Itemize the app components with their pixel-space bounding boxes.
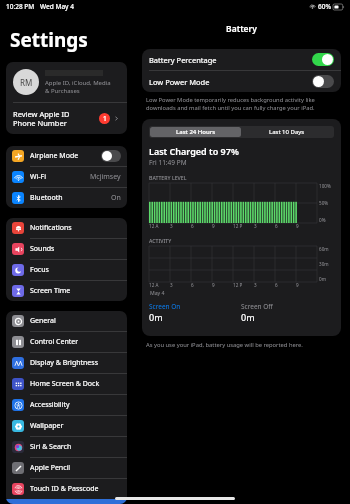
button[interactable]: Airplane Mode [6, 146, 127, 166]
staticText: 60% [318, 2, 331, 11]
button[interactable] [312, 75, 334, 88]
staticText: Home Screen & Dock [30, 379, 100, 389]
staticText: Touch ID & Passcode [30, 484, 99, 494]
staticText: 12 A [149, 223, 159, 229]
button[interactable]: Last 10 Days [241, 127, 333, 137]
staticText: 6 [275, 282, 278, 288]
button[interactable]: Focus [6, 260, 127, 280]
staticText: 12 A [149, 282, 159, 288]
button[interactable]: Screen Time [6, 281, 127, 301]
button[interactable]: Sounds [6, 239, 127, 259]
button[interactable]: Display & Brightness [6, 353, 127, 373]
staticText: 0% [319, 217, 326, 223]
button[interactable]: RM [6, 62, 127, 102]
staticText: Low Power Mode temporarily reduces backg… [146, 96, 315, 111]
button[interactable]: Low Power Mode [142, 71, 341, 92]
button[interactable]: General [6, 311, 127, 331]
staticText: 6 [191, 223, 194, 229]
staticText: Wi-Fi [30, 172, 47, 182]
button[interactable]: Touch ID & Passcode [6, 479, 127, 499]
staticText: 50% [319, 200, 329, 206]
button[interactable] [101, 150, 121, 162]
staticText: On [111, 193, 121, 203]
staticText: Battery [142, 23, 341, 35]
staticText: RM [20, 77, 33, 88]
staticText: 9 [212, 282, 215, 288]
button[interactable]: Battery [6, 499, 127, 504]
staticText: Low Power Mode [149, 77, 210, 87]
button[interactable]: Control Center [6, 332, 127, 352]
staticText: Screen On [149, 302, 181, 311]
staticText: Siri & Search [30, 442, 72, 452]
staticText: 0m [319, 276, 326, 282]
staticText: Last 10 Days [269, 128, 305, 136]
staticText: Last 24 Hours [176, 128, 216, 136]
staticText: Apple Pencil [30, 463, 71, 473]
staticText: 10:28 PM [6, 2, 35, 11]
staticText: 6 [191, 282, 194, 288]
button[interactable]: Battery Percentage [142, 49, 341, 70]
staticText: 3 [254, 223, 257, 229]
staticText: 100% [319, 183, 331, 189]
staticText: 3 [170, 223, 173, 229]
button[interactable]: Home Screen & Dock [6, 374, 127, 394]
staticText: 1 [103, 114, 107, 123]
staticText: 0m [149, 311, 163, 323]
staticText: Bluetooth [30, 193, 63, 203]
staticText: Battery Percentage [149, 55, 217, 65]
staticText: 3 [254, 282, 257, 288]
button[interactable]: Accessibility [6, 395, 127, 415]
staticText: Review Apple ID Phone Number [13, 109, 70, 128]
staticText: 12 P [233, 282, 243, 288]
staticText: Control Center [30, 337, 79, 347]
button[interactable]: Notifications [6, 218, 127, 238]
staticText: 6 [275, 223, 278, 229]
button[interactable]: Wallpaper [6, 416, 127, 436]
staticText: May 4 [150, 289, 165, 296]
staticText: Apple ID, iCloud, Media & Purchases [45, 79, 111, 95]
staticText: Accessibility [30, 400, 70, 410]
staticText: 60m [319, 246, 329, 252]
button[interactable]: Wi-Fi [6, 167, 127, 187]
staticText: Notifications [30, 223, 72, 233]
button[interactable]: Bluetooth [6, 188, 127, 208]
button[interactable]: Review Apple ID Phone Number [6, 103, 127, 134]
staticText: 9 [212, 223, 215, 229]
staticText: Screen Off [241, 302, 273, 311]
staticText: Wallpaper [30, 421, 64, 431]
staticText: Fri 11:49 PM [149, 158, 187, 167]
button[interactable] [312, 53, 334, 66]
staticText: BATTERY LEVEL [149, 174, 187, 181]
button[interactable]: Apple Pencil [6, 458, 127, 478]
staticText: General [30, 316, 56, 326]
staticText: Focus [30, 265, 49, 275]
staticText: Mcjimsey [90, 172, 121, 182]
staticText: 12 P [233, 223, 243, 229]
button[interactable]: Siri & Search [6, 437, 127, 457]
staticText: 9 [296, 282, 299, 288]
staticText: Settings [10, 27, 88, 53]
staticText: Screen Time [30, 286, 71, 296]
staticText: 9 [296, 223, 299, 229]
staticText: ACTIVITY [149, 237, 172, 244]
staticText: As you use your iPad, battery usage will… [146, 341, 303, 349]
staticText: Wed May 4 [40, 2, 74, 11]
staticText: Last Charged to 97% [149, 145, 239, 157]
staticText: 30m [319, 261, 329, 267]
staticText: Display & Brightness [30, 358, 99, 368]
staticText: Sounds [30, 244, 55, 254]
staticText: 3 [170, 282, 173, 288]
staticText: 0m [241, 311, 255, 323]
button[interactable]: Last 24 Hours [150, 127, 241, 137]
staticText: Airplane Mode [30, 151, 79, 161]
